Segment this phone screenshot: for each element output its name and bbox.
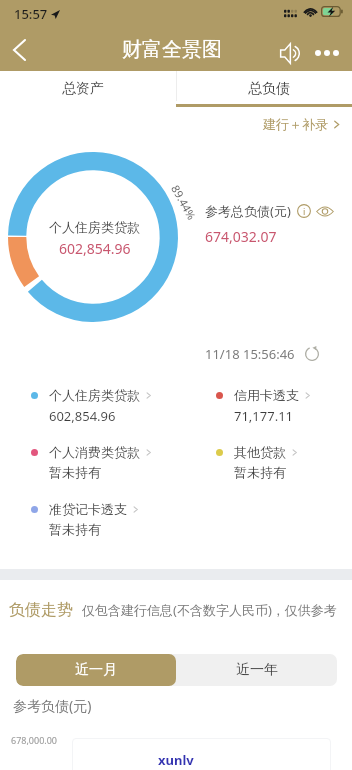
staticText: 参考负债(元) <box>13 696 92 715</box>
button[interactable] <box>0 71 176 105</box>
staticText: 个人住房类贷款 <box>49 219 140 235</box>
button[interactable]: 个人消费类贷款 <box>31 444 153 480</box>
staticText: 个人消费类贷款 <box>49 444 140 460</box>
button[interactable]: More options <box>311 39 343 67</box>
staticText: 602,854.96 <box>59 239 131 258</box>
staticText: 暂未持有 <box>49 521 101 537</box>
staticText: i <box>303 205 306 217</box>
button[interactable]: 个人住房类贷款 <box>31 387 153 425</box>
button[interactable]: Info <box>296 203 312 219</box>
staticText: 近一年 <box>236 661 278 679</box>
button[interactable]: 近一月 <box>16 654 176 686</box>
button[interactable] <box>176 71 352 105</box>
button[interactable]: 近一年 <box>176 654 337 686</box>
staticText: 暂未持有 <box>49 464 101 480</box>
staticText: 负债走势 <box>9 600 73 620</box>
staticText: 暂未持有 <box>234 464 286 480</box>
staticText: 674,032.07 <box>205 227 277 246</box>
staticText: 参考总负债(元) <box>205 202 291 220</box>
button[interactable]: Refresh <box>303 345 321 363</box>
button[interactable]: Toggle visibility <box>315 201 335 221</box>
staticText: 678,000.00 <box>11 734 58 746</box>
staticText: 仅包含建行信息(不含数字人民币)，仅供参考 <box>82 601 337 619</box>
staticText: 15:57 <box>14 5 48 23</box>
staticText: 总资产 <box>62 80 104 98</box>
staticText: 近一月 <box>75 661 117 679</box>
staticText: 89.44% <box>168 182 200 223</box>
staticText: 其他贷款 <box>234 444 286 460</box>
staticText: 准贷记卡透支 <box>49 501 127 517</box>
staticText: 71,177.11 <box>234 407 294 425</box>
button[interactable]: Sound <box>277 39 305 67</box>
button[interactable]: 准贷记卡透支 <box>31 501 140 537</box>
staticText: 财富全景图 <box>122 37 222 62</box>
staticText: 个人住房类贷款 <box>49 387 140 403</box>
button[interactable]: Back <box>1 32 37 68</box>
staticText: 602,854.96 <box>49 407 116 425</box>
staticText: xunlv <box>158 751 194 769</box>
button[interactable]: 信用卡透支 <box>216 387 312 425</box>
staticText: 11/18 15:56:46 <box>205 345 295 363</box>
button[interactable]: 建行＋补录 <box>263 116 342 132</box>
button[interactable]: 其他贷款 <box>216 444 299 480</box>
staticText: 建行＋补录 <box>263 116 328 132</box>
staticText: 总负债 <box>248 80 290 98</box>
staticText: 信用卡透支 <box>234 387 299 403</box>
